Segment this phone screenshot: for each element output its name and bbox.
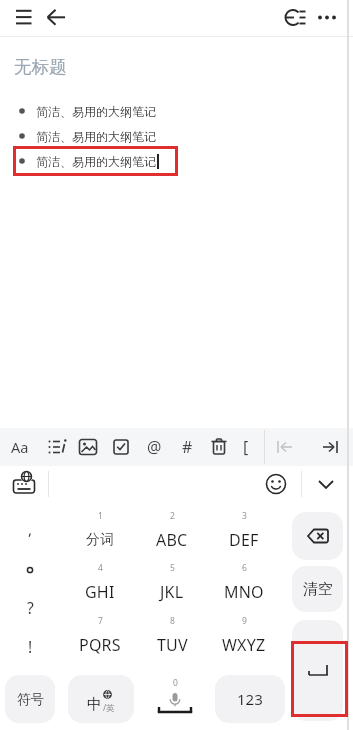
staticText: 简洁、易用的大纲笔记 [36, 104, 156, 119]
button[interactable]: 6 [208, 562, 280, 612]
button[interactable] [40, 0, 74, 35]
staticText: ! [28, 636, 33, 657]
staticText: Aa [11, 437, 29, 457]
staticText: 7 [98, 615, 103, 627]
staticText: 5 [170, 562, 175, 574]
button[interactable] [41, 432, 69, 462]
staticText: 0 [173, 677, 178, 689]
staticText: 3 [242, 510, 247, 522]
staticText: [ [243, 436, 249, 458]
button[interactable] [292, 620, 343, 721]
staticText: GHI [85, 581, 115, 603]
button[interactable] [74, 432, 102, 462]
staticText: 无标题 [14, 56, 67, 78]
button[interactable]: 简洁、易用的大纲笔记 [14, 127, 156, 145]
staticText: @ [147, 436, 162, 458]
staticText: 分词 [86, 531, 115, 549]
staticText: 简洁、易用的大纲笔记 [36, 154, 156, 169]
button[interactable] [205, 432, 233, 462]
button[interactable] [6, 0, 40, 35]
staticText: 中 [87, 695, 102, 714]
staticText: 8 [170, 615, 175, 627]
button[interactable]: [ [236, 432, 256, 462]
button[interactable]: 简洁、易用的大纲笔记 [14, 102, 156, 120]
button[interactable]: 清空 [292, 566, 343, 612]
button[interactable] [278, 0, 312, 35]
button[interactable] [18, 558, 42, 582]
staticText: 简洁、易用的大纲笔记 [36, 129, 156, 144]
staticText: 符号 [17, 691, 44, 708]
button[interactable] [107, 432, 135, 462]
staticText: MNO [224, 581, 264, 603]
staticText: 6 [242, 562, 247, 574]
button[interactable]: 1 [64, 510, 136, 560]
staticText: ? [27, 597, 34, 618]
button[interactable]: @ [140, 432, 168, 462]
button[interactable]: Aa [6, 432, 34, 462]
button[interactable]: , [18, 517, 42, 541]
button[interactable] [292, 512, 343, 560]
button[interactable] [271, 432, 299, 462]
button[interactable]: 7 [64, 615, 136, 665]
staticText: 1 [98, 510, 103, 522]
staticText: 123 [237, 689, 263, 709]
button[interactable]: 5 [136, 562, 208, 612]
button[interactable]: 4 [64, 562, 136, 612]
staticText: 9 [242, 615, 247, 627]
button[interactable]: 3 [208, 510, 280, 560]
button[interactable] [8, 468, 40, 500]
staticText: ABC [156, 529, 188, 551]
button[interactable] [312, 0, 346, 35]
staticText: 4 [98, 562, 103, 574]
button[interactable]: 简洁、易用的大纲笔记 [14, 152, 159, 170]
staticText: JKL [160, 581, 184, 603]
staticText: DEF [229, 529, 259, 551]
button[interactable]: 123 [215, 675, 285, 723]
staticText: PQRS [79, 634, 121, 656]
staticText: # [182, 436, 193, 458]
button[interactable]: 2 [136, 510, 208, 560]
button[interactable]: 符号 [5, 675, 55, 723]
button[interactable]: # [173, 432, 201, 462]
button[interactable]: ? [18, 595, 42, 619]
staticText: 清空 [303, 580, 333, 599]
button[interactable]: 9 [208, 615, 280, 665]
button[interactable] [316, 432, 344, 462]
button[interactable]: ! [18, 634, 42, 658]
button[interactable]: 0 [140, 675, 210, 723]
staticText: TUV [157, 634, 188, 656]
button[interactable]: 8 [136, 615, 208, 665]
button[interactable]: 中 [68, 675, 134, 723]
button[interactable] [310, 468, 342, 500]
staticText: 2 [170, 510, 175, 522]
staticText: WXYZ [222, 634, 266, 656]
staticText: /英 [103, 702, 115, 714]
button[interactable] [260, 468, 292, 500]
staticText: , [28, 519, 33, 539]
